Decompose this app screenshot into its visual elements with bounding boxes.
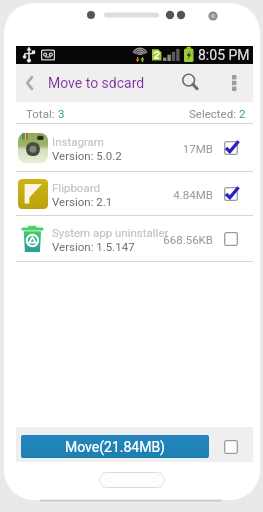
- button[interactable]: Instagram: [16, 124, 253, 172]
- staticText: Version: 2.1: [52, 195, 113, 208]
- button[interactable]: More options: [220, 64, 248, 102]
- staticText: 17MB: [182, 142, 213, 155]
- staticText: Move(21.84MB): [65, 439, 165, 455]
- staticText: Version: 5.0.2: [52, 149, 122, 162]
- staticText: System app uninstaller: [52, 226, 169, 239]
- button[interactable]: Move(21.84MB): [21, 435, 209, 458]
- staticText: Selected:: [189, 107, 239, 120]
- button[interactable]: Back: [16, 64, 42, 102]
- button[interactable]: System app uninstaller: [16, 216, 253, 262]
- button[interactable]: Flipboard: [16, 172, 253, 216]
- staticText: Total:: [26, 107, 58, 120]
- button[interactable]: Search: [173, 64, 209, 102]
- staticText: 8:05 PM: [198, 47, 250, 63]
- staticText: Flipboard: [52, 181, 100, 194]
- staticText: 3: [58, 107, 65, 120]
- staticText: Version: 1.5.147: [52, 240, 135, 253]
- button[interactable]: Move to sdcard: [48, 75, 145, 91]
- staticText: 2: [239, 107, 246, 120]
- staticText: Instagram: [52, 135, 104, 148]
- staticText: 4.84MB: [173, 188, 213, 201]
- staticText: 668.56KB: [163, 233, 213, 246]
